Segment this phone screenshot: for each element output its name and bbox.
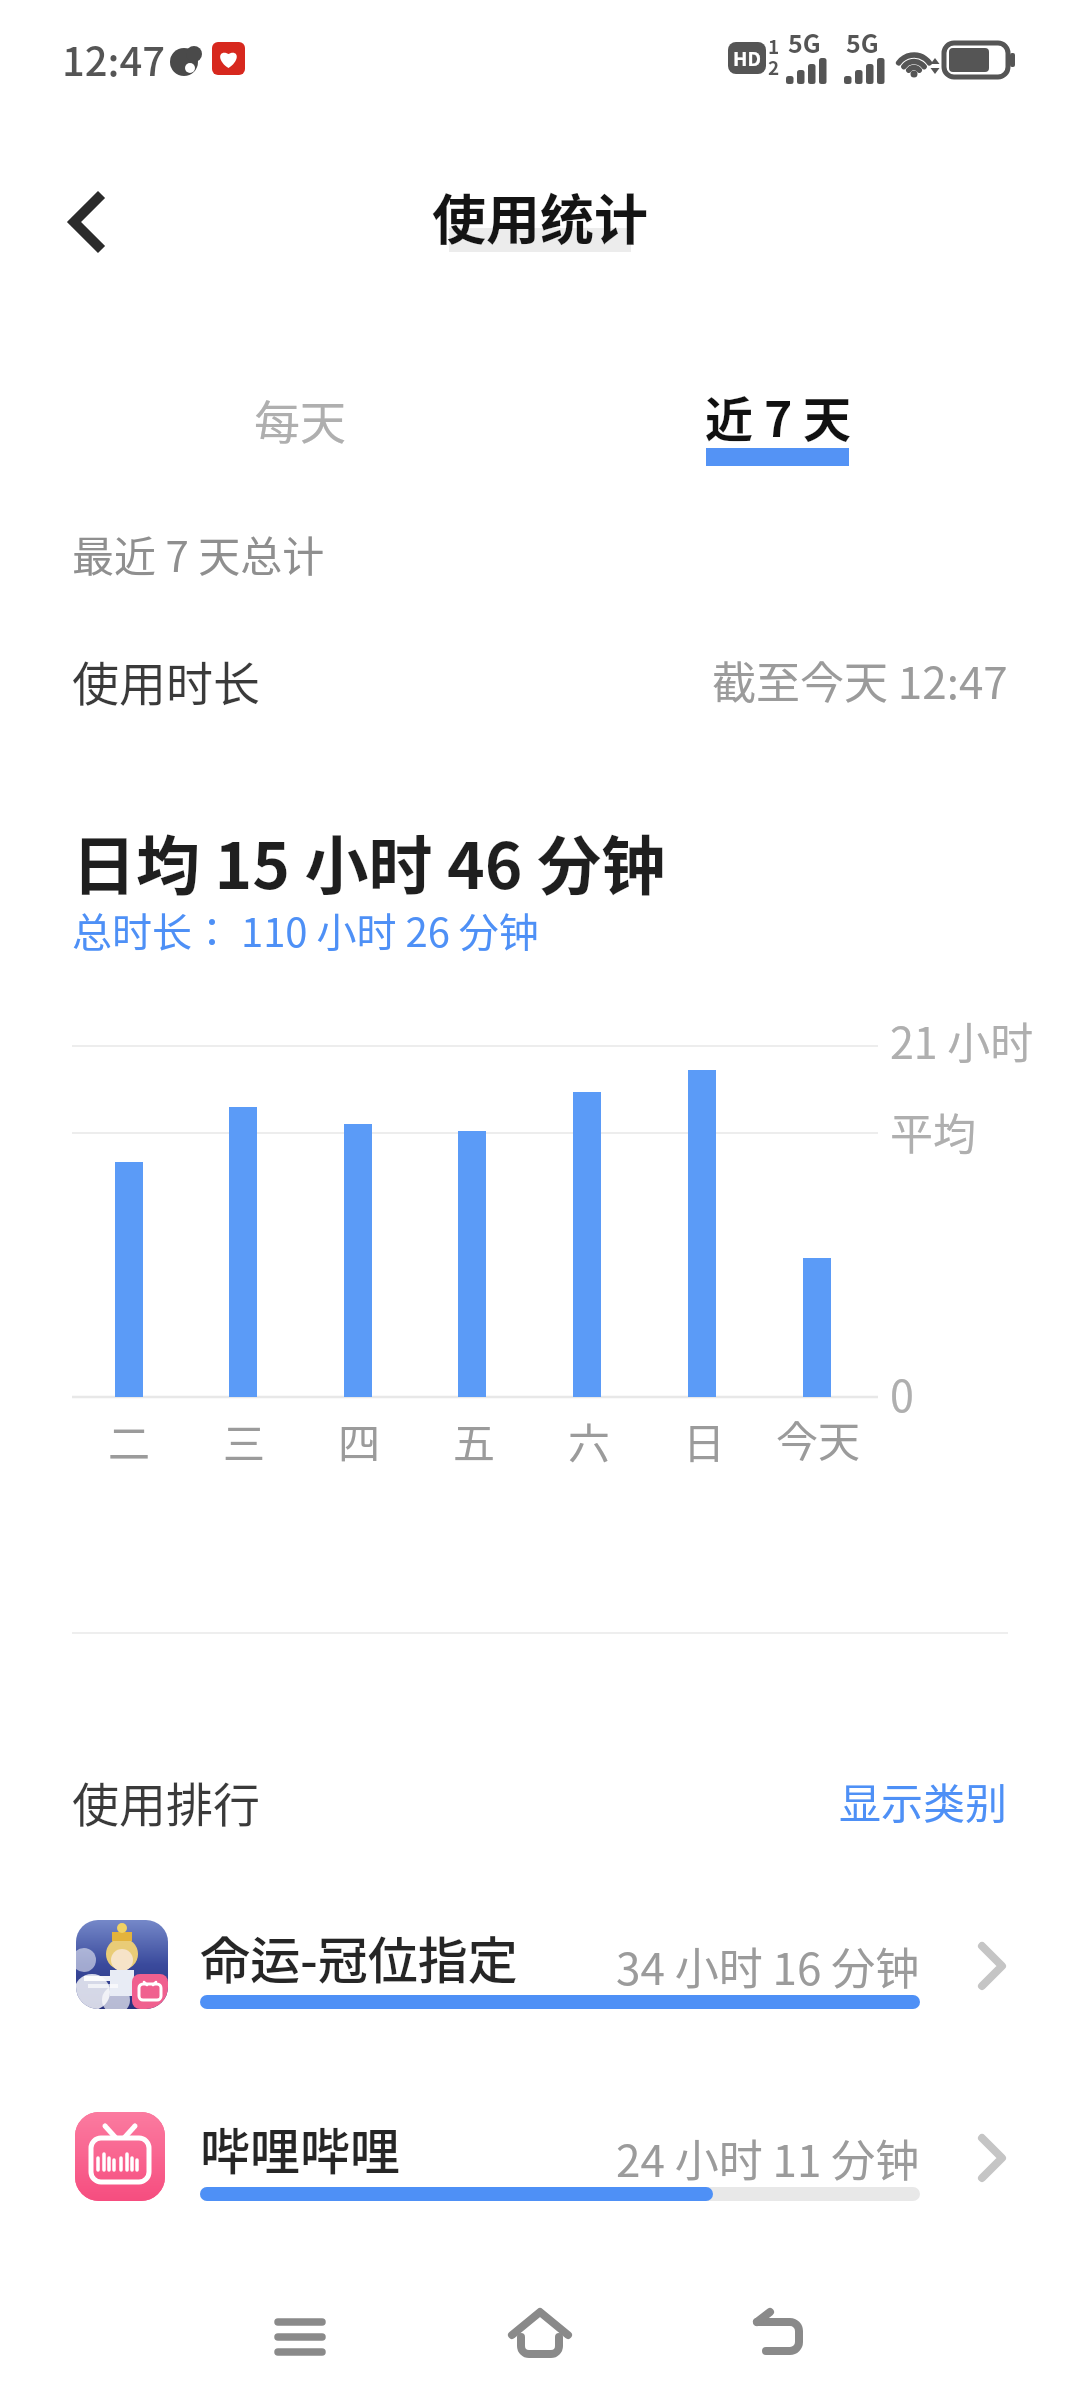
staticText: 最近 7 天总计 [72,523,325,584]
staticText: 每天 [254,386,346,453]
staticText: 命运-冠位指定 [200,1921,518,1993]
staticText: 34 小时 16 分钟 [616,1934,920,1998]
button[interactable] [240,2290,360,2390]
staticText: 使用排行 [72,1767,260,1835]
button[interactable] [40,2090,1040,2225]
staticText: 平均 [890,1100,976,1162]
staticText: 哔哩哔哩 [200,2112,400,2184]
staticText: 21 小时 [890,1009,1034,1071]
staticText: 五 [453,1410,496,1471]
staticText: 5G [846,24,879,60]
staticText: 使用时长 [72,646,260,714]
button[interactable] [480,2290,600,2390]
button[interactable] [52,186,132,256]
staticText: 三 [223,1410,266,1471]
staticText: HD [733,44,761,72]
staticText: 六 [568,1410,611,1471]
staticText: 12:47 [62,30,166,88]
staticText: 5G [788,24,821,60]
staticText: 1 [768,32,780,60]
staticText: 近 7 天 [705,381,852,451]
button[interactable] [718,2290,838,2390]
button[interactable]: 近 7 天 [578,356,978,476]
staticText: 总时长： 110 小时 26 分钟 [72,901,539,959]
staticText: 显示类别 [839,1770,1008,1831]
staticText: 24 小时 11 分钟 [616,2126,920,2190]
staticText: 二 [108,1410,151,1471]
staticText: 使用统计 [432,177,648,255]
staticText: 日 [683,1410,726,1471]
staticText: 截至今天 12:47 [712,648,1008,712]
staticText: 四 [338,1410,381,1471]
button[interactable]: 显示类别 [808,1760,1008,1840]
staticText: 2 [768,53,780,81]
staticText: 日均 15 小时 46 分钟 [72,815,666,908]
staticText: 今天 [776,1408,861,1469]
button[interactable]: 每天 [100,359,500,479]
staticText: 0 [890,1362,914,1424]
button[interactable] [40,1895,1040,2030]
